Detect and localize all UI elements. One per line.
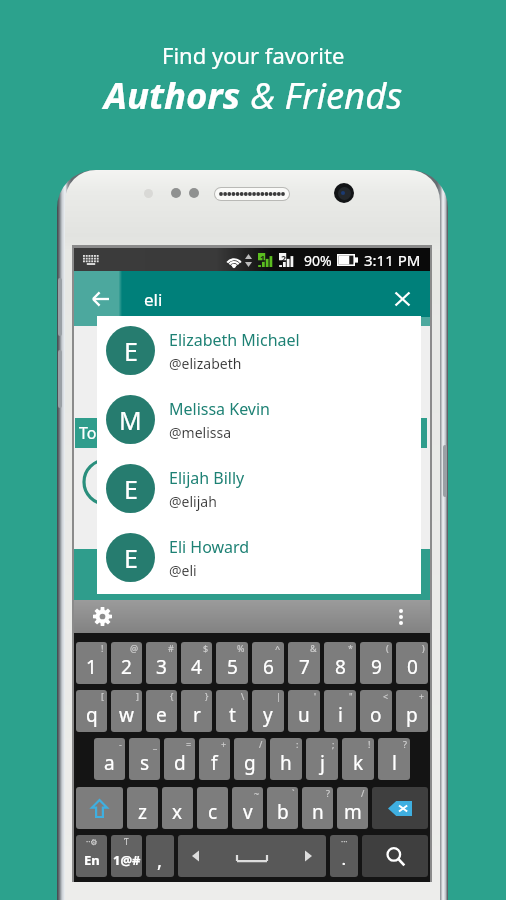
button[interactable]: i (324, 690, 356, 732)
staticText: { (170, 690, 174, 702)
button[interactable]: h (270, 738, 302, 780)
staticText: . (342, 851, 346, 869)
staticText: h (280, 750, 292, 776)
staticText: b (277, 799, 289, 825)
button[interactable]: 3 (146, 642, 177, 684)
button[interactable]: 6 (252, 642, 284, 684)
button[interactable]: Keyboard settings (93, 607, 112, 626)
staticText: l (392, 750, 397, 776)
staticText: En (84, 851, 100, 869)
staticText: f (211, 750, 218, 776)
button[interactable]: f (199, 738, 230, 780)
button[interactable]: s (129, 738, 160, 780)
button[interactable]: t (216, 690, 248, 732)
staticText: $ (203, 642, 209, 654)
button[interactable]: d (164, 738, 195, 780)
button[interactable]: 7 (288, 642, 320, 684)
staticText: ( (386, 642, 389, 654)
button[interactable]: 1 (76, 642, 107, 684)
staticText: m (344, 799, 362, 825)
button[interactable]: 0 (396, 642, 428, 684)
button[interactable]: Shift (76, 787, 123, 829)
button[interactable]: E (97, 523, 421, 592)
button[interactable]: 2 (111, 642, 142, 684)
staticText: 1@# (113, 851, 141, 869)
staticText: s (140, 750, 150, 776)
staticText: + (221, 738, 227, 750)
staticText: To (79, 422, 97, 444)
staticText: ; (332, 738, 335, 750)
staticText: @elizabeth (169, 354, 242, 373)
button[interactable]: Search (362, 835, 428, 877)
staticText: e (156, 702, 167, 728)
button[interactable]: 8 (324, 642, 356, 684)
button[interactable]: Backspace (372, 787, 428, 829)
button[interactable]: q (76, 690, 107, 732)
button[interactable]: r (181, 690, 212, 732)
button[interactable]: x (162, 787, 193, 829)
staticText: r (193, 702, 201, 728)
staticText: w (119, 702, 134, 728)
staticText: E (124, 334, 138, 368)
staticText: y (263, 702, 273, 728)
button[interactable]: Space (178, 835, 326, 877)
button[interactable]: . (330, 835, 358, 877)
button[interactable]: k (342, 738, 374, 780)
button[interactable]: 4 (181, 642, 212, 684)
button[interactable]: o (360, 690, 392, 732)
staticText: g (244, 750, 256, 776)
staticText: d (174, 750, 186, 776)
staticText: q (86, 702, 98, 728)
staticText: \ (241, 690, 245, 702)
button[interactable]: w (111, 690, 142, 732)
button[interactable]: 9 (360, 642, 392, 684)
button[interactable]: E (97, 454, 421, 523)
button[interactable]: l (378, 738, 410, 780)
staticText: & Friends (241, 70, 403, 120)
staticText: % (237, 642, 245, 654)
staticText: @ (130, 642, 139, 654)
button[interactable]: Clear search (379, 276, 425, 322)
staticText: ^ (275, 642, 281, 654)
button[interactable]: M (97, 385, 421, 454)
staticText: o (370, 702, 382, 728)
staticText: } (205, 690, 209, 702)
button[interactable]: c (197, 787, 228, 829)
button[interactable]: m (337, 787, 368, 829)
staticText: z (138, 799, 147, 825)
staticText: E (124, 472, 138, 506)
staticText: v (243, 799, 253, 825)
button[interactable]: j (306, 738, 338, 780)
button[interactable]: p (396, 690, 428, 732)
button[interactable]: E (97, 316, 421, 385)
staticText: ] (136, 690, 139, 702)
staticText: 2 (281, 252, 287, 264)
button[interactable]: More options (399, 609, 403, 625)
button[interactable]: g (234, 738, 266, 780)
button[interactable]: v (232, 787, 263, 829)
staticText: # (168, 642, 174, 654)
button[interactable]: 1@# (111, 835, 142, 877)
staticText: 7 (299, 654, 310, 680)
button[interactable]: n (302, 787, 333, 829)
staticText: 9 (371, 654, 382, 680)
staticText: Eli Howard (169, 536, 250, 558)
button[interactable]: y (252, 690, 284, 732)
button[interactable]: u (288, 690, 320, 732)
button[interactable]: Back (77, 276, 123, 322)
staticText: ··⚙ (86, 836, 98, 847)
staticText: @melissa (169, 423, 232, 442)
staticText: 8 (335, 654, 346, 680)
button[interactable]: e (146, 690, 177, 732)
button[interactable]: , (146, 835, 174, 877)
staticText: ' (314, 690, 317, 702)
button[interactable]: a (94, 738, 125, 780)
button[interactable]: 5 (216, 642, 248, 684)
staticText: ? (403, 738, 407, 750)
staticText: 1 (86, 654, 97, 680)
staticText: k (353, 750, 364, 776)
button[interactable]: En (76, 835, 107, 877)
button[interactable]: z (127, 787, 158, 829)
staticText: : (296, 738, 299, 750)
button[interactable]: b (267, 787, 298, 829)
